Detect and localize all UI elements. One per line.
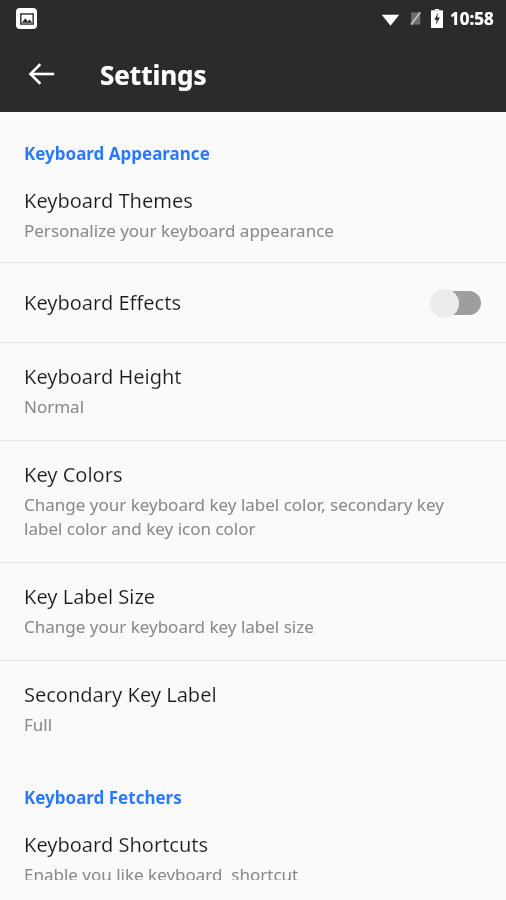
staticText: Key Colors [24,461,123,488]
button[interactable]: Keyboard Effects [0,263,506,342]
staticText: Personalize your keyboard appearance [24,219,334,242]
staticText: Keyboard Themes [24,187,193,214]
button[interactable]: Key Colors [0,441,506,562]
staticText: Keyboard Fetchers [24,786,182,809]
staticText: Full [24,713,53,736]
button[interactable]: Secondary Key Label [0,661,506,758]
button[interactable]: Back [14,46,70,102]
staticText: Key Label Size [24,583,156,610]
staticText: Keyboard Appearance [24,142,210,165]
staticText: Change your keyboard key label size [24,615,314,638]
button[interactable]: Key Label Size [0,563,506,660]
staticText: Change your keyboard key label color, se… [24,493,482,540]
staticText: 10:58 [450,7,494,30]
staticText: Keyboard Shortcuts [24,831,209,858]
staticText: Settings [100,57,207,92]
staticText: Keyboard Effects [24,289,430,316]
button[interactable]: Keyboard Themes [0,179,506,262]
staticText: Normal [24,395,85,418]
button[interactable]: Keyboard Shortcuts [0,823,506,900]
staticText: Enable you like keyboard shortcut [24,863,299,880]
button[interactable]: Keyboard Height [0,343,506,440]
staticText: Secondary Key Label [24,681,217,708]
staticText: Keyboard Height [24,363,182,390]
